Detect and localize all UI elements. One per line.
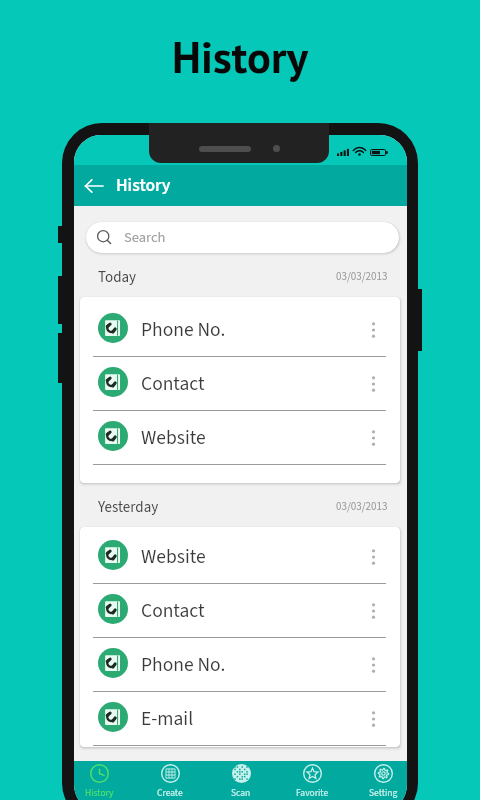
- staticText: Contact: [141, 370, 205, 398]
- button[interactable]: Create: [137, 761, 203, 800]
- button[interactable]: More options: [364, 318, 382, 342]
- button[interactable]: E-mail: [80, 692, 400, 746]
- staticText: History: [116, 173, 171, 198]
- staticText: History: [85, 786, 114, 800]
- staticText: Phone No.: [141, 316, 226, 344]
- button[interactable]: More options: [364, 599, 382, 623]
- button[interactable]: More options: [364, 426, 382, 450]
- staticText: Website: [141, 543, 206, 571]
- staticText: Website: [141, 424, 206, 452]
- button[interactable]: More options: [364, 545, 382, 569]
- staticText: Favorite: [296, 786, 329, 800]
- staticText: Yesterday: [98, 497, 159, 517]
- staticText: Phone No.: [141, 651, 226, 679]
- staticText: 03/03/2013: [336, 269, 388, 285]
- button[interactable]: Phone No.: [80, 303, 400, 357]
- button[interactable]: Setting: [350, 761, 407, 800]
- staticText: Contact: [141, 597, 205, 625]
- staticText: Scan: [231, 786, 251, 800]
- button[interactable]: History: [74, 761, 132, 800]
- button[interactable]: More options: [364, 653, 382, 677]
- staticText: 03/03/2013: [336, 499, 388, 515]
- staticText: Setting: [369, 786, 398, 800]
- button[interactable]: Favorite: [279, 761, 345, 800]
- button[interactable]: Contact: [80, 584, 400, 638]
- staticText: History: [0, 28, 480, 86]
- staticText: Create: [157, 786, 183, 800]
- button[interactable]: Scan: [208, 761, 274, 800]
- staticText: Today: [98, 267, 137, 287]
- button[interactable]: Contact: [80, 357, 400, 411]
- button[interactable]: More options: [364, 707, 382, 731]
- button[interactable]: Website: [80, 411, 400, 465]
- button[interactable]: Back: [76, 165, 111, 206]
- button[interactable]: More options: [364, 372, 382, 396]
- button[interactable]: Phone No.: [80, 638, 400, 692]
- staticText: Search: [124, 227, 166, 248]
- button[interactable]: Website: [80, 530, 400, 584]
- staticText: E-mail: [141, 705, 194, 733]
- button[interactable]: Search: [86, 222, 399, 253]
